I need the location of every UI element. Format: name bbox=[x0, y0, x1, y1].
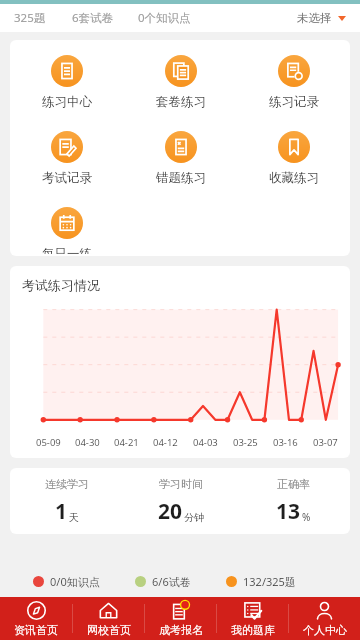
button[interactable]: 我的题库 bbox=[217, 597, 288, 640]
button[interactable]: 收藏练习 bbox=[257, 129, 331, 188]
staticText: 0/0知识点 bbox=[50, 574, 100, 589]
staticText: 收藏练习 bbox=[269, 170, 319, 186]
staticText: 连续学习 bbox=[45, 477, 89, 491]
staticText: 天 bbox=[69, 511, 79, 524]
button[interactable]: 套卷练习 bbox=[144, 53, 218, 112]
staticText: 6/6试卷 bbox=[152, 574, 191, 589]
button[interactable]: 练习中心 bbox=[30, 53, 104, 112]
staticText: 04-21 bbox=[114, 436, 139, 449]
staticText: 分钟 bbox=[184, 511, 204, 524]
button[interactable]: 成考报名 bbox=[145, 597, 216, 640]
staticText: 正确率 bbox=[277, 477, 310, 491]
staticText: 03-16 bbox=[273, 436, 298, 449]
staticText: 成考报名 bbox=[159, 623, 203, 637]
staticText: 我的题库 bbox=[231, 623, 275, 637]
staticText: 错题练习 bbox=[156, 170, 206, 186]
staticText: 04-12 bbox=[153, 436, 178, 449]
staticText: 练习记录 bbox=[269, 94, 319, 110]
button[interactable]: 考试记录 bbox=[30, 129, 104, 188]
staticText: 0个知识点 bbox=[138, 10, 191, 26]
staticText: % bbox=[302, 510, 311, 524]
staticText: 资讯首页 bbox=[14, 623, 58, 637]
staticText: 套卷练习 bbox=[156, 94, 206, 110]
staticText: 1 bbox=[55, 497, 68, 526]
staticText: 学习时间 bbox=[159, 477, 203, 491]
staticText: 6套试卷 bbox=[72, 10, 114, 26]
staticText: 04-30 bbox=[75, 436, 100, 449]
staticText: 04-03 bbox=[193, 436, 218, 449]
button[interactable]: 每日一练 bbox=[30, 205, 104, 256]
staticText: 未选择 bbox=[297, 11, 332, 25]
staticText: 考试记录 bbox=[42, 170, 92, 186]
button[interactable]: 网校首页 bbox=[73, 597, 144, 640]
staticText: 13 bbox=[276, 497, 301, 526]
staticText: 132/325题 bbox=[243, 574, 296, 589]
staticText: 每日一练 bbox=[42, 246, 92, 254]
button[interactable]: 个人中心 bbox=[289, 597, 360, 640]
button[interactable]: 未选择 bbox=[295, 7, 348, 29]
button[interactable]: 练习记录 bbox=[257, 53, 331, 112]
staticText: 325题 bbox=[14, 10, 46, 26]
button[interactable]: 错题练习 bbox=[144, 129, 218, 188]
button[interactable]: 连续学习 bbox=[10, 468, 124, 534]
button[interactable]: 正确率 bbox=[237, 468, 350, 534]
staticText: 练习中心 bbox=[42, 94, 92, 110]
staticText: 03-25 bbox=[233, 436, 258, 449]
staticText: 考试练习情况 bbox=[22, 277, 100, 293]
staticText: 03-07 bbox=[313, 436, 338, 449]
button[interactable]: 资讯首页 bbox=[0, 597, 72, 640]
staticText: 网校首页 bbox=[87, 623, 131, 637]
button[interactable]: 学习时间 bbox=[124, 468, 237, 534]
staticText: 20 bbox=[158, 497, 183, 526]
staticText: 05-09 bbox=[36, 436, 61, 449]
staticText: 个人中心 bbox=[303, 623, 347, 637]
